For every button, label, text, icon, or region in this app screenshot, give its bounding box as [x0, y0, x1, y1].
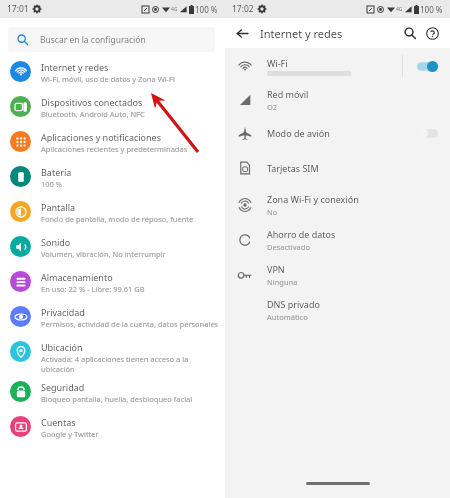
staticText: Seguridad — [41, 381, 85, 393]
staticText: VPN — [267, 263, 285, 275]
staticText: No — [267, 207, 278, 217]
button[interactable]: Sonido — [0, 236, 225, 259]
button[interactable]: Almacenamiento — [0, 271, 225, 294]
staticText: Google y Twitter — [41, 429, 99, 439]
staticText: Desactivado — [267, 242, 310, 252]
staticText: Cuentas — [41, 416, 76, 428]
button[interactable]: Buscar en la configuración — [8, 27, 215, 52]
button[interactable]: Batería — [0, 166, 225, 189]
button[interactable]: Seguridad — [0, 381, 225, 404]
button[interactable]: Cuentas — [0, 416, 225, 439]
button[interactable]: Search — [399, 22, 421, 44]
staticText: Ninguna — [267, 277, 298, 287]
button[interactable]: DNS privado — [225, 298, 450, 322]
button[interactable]: Wi-Fi — [413, 57, 442, 76]
button[interactable]: Back — [232, 23, 252, 43]
staticText: Modo de avión — [267, 127, 330, 139]
button[interactable]: Red móvil — [225, 88, 450, 112]
staticText: 100 % — [41, 179, 63, 189]
staticText: Aplicaciones recientes y predeterminadas — [41, 144, 188, 154]
staticText: 100 % — [195, 4, 218, 15]
button[interactable]: Pantalla — [0, 201, 225, 224]
staticText: Privacidad — [41, 306, 85, 318]
button[interactable]: Aplicaciones y notificaciones — [0, 131, 225, 154]
staticText: Pantalla — [41, 201, 76, 213]
staticText: Automático — [267, 312, 308, 322]
staticText: Tarjetas SIM — [267, 162, 319, 174]
staticText: Red móvil — [267, 88, 309, 100]
button[interactable]: Ubicación — [0, 341, 225, 374]
staticText: 4G — [396, 6, 403, 13]
staticText: ubicación — [41, 364, 75, 374]
staticText: Wi-Fi — [267, 57, 288, 69]
button[interactable]: Modo de avión — [225, 123, 450, 143]
staticText: Volumen, vibración, No interrumpir — [41, 249, 166, 259]
staticText: Bluetooth, Android Auto, NFC — [41, 109, 145, 119]
staticText: Ubicación — [41, 341, 83, 353]
button[interactable]: Wi-Fi — [225, 55, 450, 77]
staticText: Buscar en la configuración — [40, 34, 146, 46]
button[interactable]: VPN — [225, 263, 450, 287]
button[interactable]: Tarjetas SIM — [225, 158, 450, 178]
staticText: Ahorro de datos — [267, 228, 336, 240]
button[interactable]: Zona Wi-Fi y conexión — [225, 193, 450, 217]
staticText: DNS privado — [267, 298, 320, 310]
button[interactable]: Ahorro de datos — [225, 228, 450, 252]
staticText: Activada: 4 aplicaciones tienen acceso a… — [41, 354, 189, 364]
staticText: Almacenamiento — [41, 271, 113, 283]
button[interactable]: Privacidad — [0, 306, 225, 329]
staticText: Dispositivos conectados — [41, 96, 143, 108]
staticText: Batería — [41, 166, 72, 178]
button[interactable]: Dispositivos conectados — [0, 96, 225, 119]
button[interactable]: Help — [421, 22, 443, 44]
staticText: Internet y redes — [260, 26, 343, 41]
staticText: Zona Wi-Fi y conexión — [267, 193, 359, 205]
staticText: Permisos, actividad de la cuenta, datos … — [41, 319, 219, 329]
staticText: Wi-Fi, móvil, uso de datos y Zona Wi-Fi — [41, 74, 175, 84]
staticText: Sonido — [41, 236, 71, 248]
button[interactable]: Internet y redes — [0, 61, 225, 84]
staticText: 4G — [171, 6, 178, 13]
staticText: Aplicaciones y notificaciones — [41, 131, 162, 143]
staticText: Fondo de pantalla, modo de reposo, fuent… — [41, 214, 194, 224]
staticText: En uso: 22 % - Libre: 99.61 GB — [41, 284, 145, 294]
staticText: 17:02 — [232, 3, 254, 15]
button[interactable]: Modo de avión — [413, 124, 442, 143]
staticText: Internet y redes — [41, 61, 109, 73]
staticText: Bloqueo pantalla, huella, desbloqueo fac… — [41, 394, 193, 404]
staticText: O2 — [267, 102, 278, 112]
staticText: 100 % — [420, 4, 443, 15]
staticText: 17:01 — [7, 3, 29, 15]
